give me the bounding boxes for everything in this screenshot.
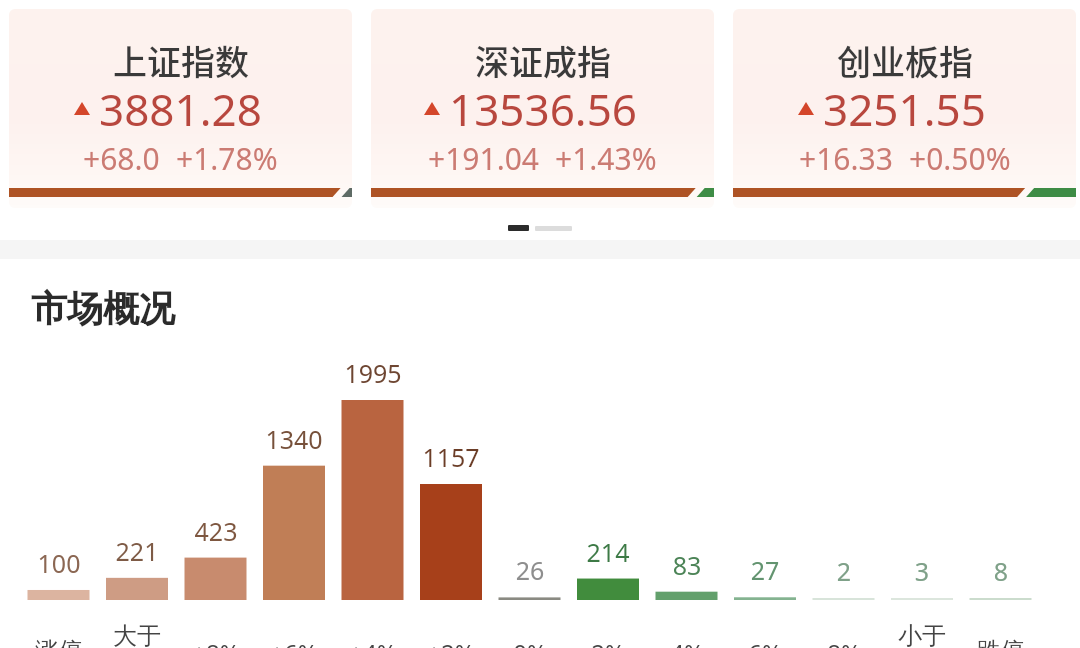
- staticText: +191.04: [428, 138, 539, 179]
- staticText: 市场概况: [31, 286, 175, 331]
- staticText: +4%: [328, 636, 418, 648]
- staticText: 26: [485, 553, 575, 587]
- staticText: +2%: [406, 636, 496, 648]
- button[interactable]: 创业板指: [733, 9, 1076, 208]
- button[interactable]: 上证指数: [9, 9, 352, 208]
- staticText: 上证指数: [113, 36, 249, 85]
- staticText: +16.33: [799, 138, 893, 179]
- button[interactable]: Page 1: [508, 225, 529, 231]
- staticText: 214: [563, 535, 653, 569]
- staticText: 8%: [799, 636, 889, 648]
- staticText: 1340: [249, 422, 339, 456]
- staticText: 6%: [720, 636, 810, 648]
- staticText: 83: [642, 548, 732, 582]
- staticText: +1.43%: [555, 138, 657, 179]
- staticText: 0%: [485, 636, 575, 648]
- staticText: 大于: [92, 621, 182, 648]
- staticText: 涨停: [14, 636, 104, 648]
- staticText: 跌停: [956, 636, 1046, 648]
- staticText: 3881.28: [99, 79, 262, 139]
- staticText: 4%: [642, 636, 732, 648]
- staticText: 2: [799, 554, 889, 588]
- staticText: 2%: [563, 636, 653, 648]
- button[interactable]: 深证成指: [371, 9, 714, 208]
- staticText: +6%: [249, 636, 339, 648]
- staticText: +1.78%: [176, 138, 278, 179]
- staticText: +68.0: [83, 138, 160, 179]
- staticText: 3251.55: [823, 79, 986, 139]
- staticText: +0.50%: [909, 138, 1011, 179]
- staticText: +8%: [171, 636, 261, 648]
- staticText: 13536.56: [449, 79, 637, 139]
- staticText: 27: [720, 553, 810, 587]
- staticText: 3: [877, 554, 967, 588]
- staticText: 创业板指: [837, 36, 973, 85]
- staticText: 100: [14, 546, 104, 580]
- staticText: 深证成指: [475, 36, 611, 85]
- staticText: 423: [171, 514, 261, 548]
- staticText: 1157: [406, 440, 496, 474]
- staticText: 221: [92, 534, 182, 568]
- staticText: 8: [956, 554, 1046, 588]
- staticText: 小于: [877, 621, 967, 648]
- staticText: 1995: [328, 356, 418, 390]
